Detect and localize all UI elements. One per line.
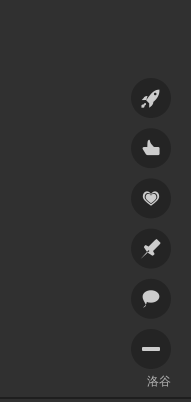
button[interactable]: Comment xyxy=(131,279,171,319)
button[interactable]: Favourite xyxy=(131,178,171,218)
staticText: 洛谷 xyxy=(147,374,171,389)
button[interactable]: Pin xyxy=(131,229,171,269)
button[interactable]: Like xyxy=(131,128,171,168)
button[interactable]: Collapse xyxy=(131,329,171,369)
button[interactable]: Boost xyxy=(131,78,171,118)
